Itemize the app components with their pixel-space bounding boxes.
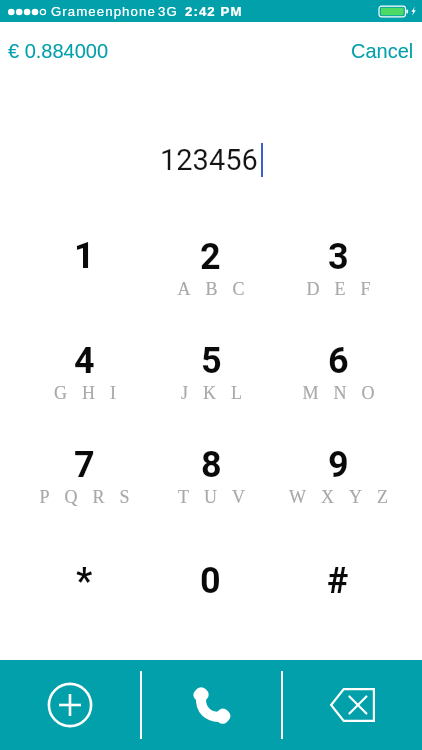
staticText: Cancel <box>351 40 414 62</box>
staticText: 3G <box>158 4 178 19</box>
button[interactable]: 9 <box>274 425 401 529</box>
staticText: MNO <box>302 383 390 403</box>
staticText: € 0.884000 <box>8 40 109 62</box>
button[interactable]: # <box>274 529 401 633</box>
button[interactable]: Cancel <box>333 30 422 68</box>
staticText: 123456 <box>160 143 258 177</box>
staticText: WXYZ <box>289 487 403 507</box>
button[interactable]: * <box>21 529 147 633</box>
button[interactable]: 1 <box>21 217 147 321</box>
button[interactable]: 3 <box>274 217 401 321</box>
button[interactable]: 6 <box>274 321 401 425</box>
staticText: TUV <box>178 487 260 507</box>
staticText: * <box>76 560 93 602</box>
staticText: ABC <box>177 279 260 299</box>
staticText: 7 <box>74 444 95 486</box>
staticText: JKL <box>181 383 257 403</box>
button[interactable]: 2 <box>147 217 274 321</box>
staticText: 0 <box>200 560 221 602</box>
button[interactable]: Call <box>142 660 281 750</box>
staticText: PQRS <box>39 487 145 507</box>
button[interactable]: Backspace <box>283 660 422 750</box>
staticText: DEF <box>306 279 386 299</box>
staticText: 2 <box>200 236 221 278</box>
staticText: 5 <box>201 340 222 382</box>
staticText: Grameenphone <box>51 4 156 19</box>
staticText: 4 <box>74 340 95 382</box>
button[interactable]: 8 <box>147 425 274 529</box>
staticText: # <box>327 560 349 602</box>
button[interactable]: 5 <box>147 321 274 425</box>
staticText: 3 <box>328 236 349 278</box>
button[interactable]: 7 <box>21 425 147 529</box>
staticText: 1 <box>74 235 95 277</box>
staticText: 9 <box>328 444 349 486</box>
button[interactable]: Add contact <box>0 660 140 750</box>
staticText: GHI <box>54 383 131 403</box>
staticText: 2:42 PM <box>185 4 243 19</box>
button[interactable]: 4 <box>21 321 147 425</box>
button[interactable]: 0 <box>147 529 274 633</box>
staticText: 8 <box>201 444 222 486</box>
staticText: 6 <box>328 340 349 382</box>
